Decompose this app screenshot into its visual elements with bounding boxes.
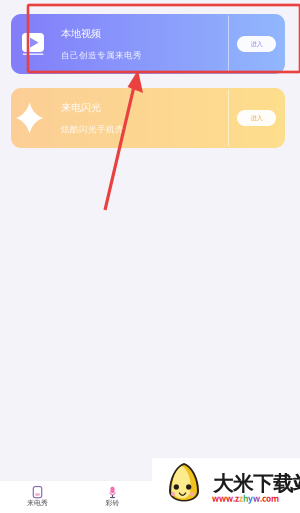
staticText: 视频 xyxy=(180,499,194,507)
staticText: 来电秀 xyxy=(27,499,48,507)
button[interactable]: 本地视频 xyxy=(11,14,285,74)
staticText: 我的 xyxy=(255,499,269,507)
button[interactable]: 我的 xyxy=(225,480,300,513)
staticText: 来电闪光 xyxy=(61,101,101,114)
staticText: 彩铃 xyxy=(105,499,119,507)
staticText: 自己创造专属来电秀 xyxy=(61,50,142,61)
staticText: z xyxy=(239,493,243,504)
staticText: 进入 xyxy=(250,40,262,48)
staticText: 进入 xyxy=(250,114,262,122)
staticText: h xyxy=(243,493,248,504)
staticText: w xyxy=(253,493,260,504)
button[interactable]: 彩铃 xyxy=(75,480,150,513)
staticText: 本地视频 xyxy=(61,27,101,40)
button[interactable]: 视频 xyxy=(150,480,225,513)
staticText: 炫酷闪光手机壳 xyxy=(61,124,124,135)
staticText: www. xyxy=(212,493,235,504)
staticText: 大米下载站 xyxy=(213,471,300,496)
staticText: y xyxy=(248,493,253,504)
button[interactable]: 来电秀 xyxy=(0,480,75,513)
staticText: .com xyxy=(260,493,279,504)
button[interactable]: 来电闪光 xyxy=(11,88,285,148)
staticText: z xyxy=(235,493,239,504)
